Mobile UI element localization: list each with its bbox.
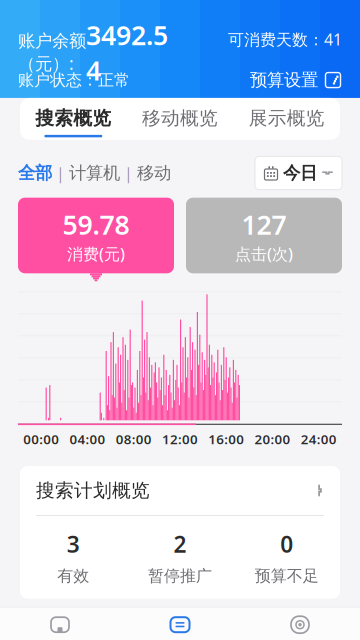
button[interactable]: Scan: [310, 0, 342, 2]
button[interactable]: 预算设置: [250, 69, 342, 91]
staticText: 消费(元): [67, 243, 125, 264]
button[interactable]: 移动概览: [127, 98, 233, 146]
staticText: 预算设置: [250, 69, 318, 91]
button[interactable]: 搜索概览: [20, 98, 127, 146]
button[interactable]: 计算机: [69, 162, 120, 184]
staticText: 127: [241, 207, 286, 242]
staticText: 2: [173, 529, 186, 559]
staticText: 搜索概览: [35, 107, 111, 130]
staticText: 移动概览: [142, 107, 218, 130]
button[interactable]: 我的: [240, 608, 360, 640]
staticText: 3492.54: [86, 17, 168, 88]
staticText: 有效: [57, 566, 89, 586]
staticText: 04:00: [69, 430, 105, 448]
button[interactable]: L1: [18, 0, 219, 7]
staticText: 08:00: [116, 430, 152, 448]
staticText: 全部: [18, 162, 52, 184]
button[interactable]: Company: [264, 0, 296, 3]
staticText: 可消费天数：41: [228, 29, 342, 50]
staticText: 展示概览: [249, 107, 325, 130]
staticText: 00:00: [23, 430, 59, 448]
staticText: 今日: [283, 162, 317, 184]
staticText: 24:00: [301, 430, 337, 448]
button[interactable]: 全部: [18, 162, 52, 184]
staticText: 0: [280, 529, 293, 559]
staticText: 12:00: [162, 430, 198, 448]
staticText: 账户状态：正常: [18, 70, 130, 90]
staticText: 点击(次): [235, 243, 293, 264]
staticText: |: [52, 162, 69, 184]
button[interactable]: 今日: [255, 156, 342, 190]
staticText: 移动: [137, 162, 171, 184]
button[interactable]: 59.78: [18, 198, 174, 281]
staticText: 59.78: [62, 207, 129, 242]
button[interactable]: 首页: [0, 608, 120, 640]
button[interactable]: 展示概览: [233, 98, 340, 146]
staticText: 3: [67, 529, 80, 559]
button[interactable]: 移动: [137, 162, 171, 184]
staticText: 16:00: [208, 430, 244, 448]
staticText: 账户余额（元）:: [18, 30, 86, 75]
button[interactable]: 127: [186, 198, 342, 281]
staticText: 计算机: [69, 162, 120, 184]
staticText: 20:00: [255, 430, 291, 448]
button[interactable]: 点睛: [120, 608, 240, 640]
button[interactable]: 搜索计划概览: [20, 466, 340, 515]
staticText: 暂停推广: [148, 566, 212, 586]
staticText: 预算不足: [255, 566, 319, 586]
staticText: |: [120, 162, 137, 184]
staticText: 搜索计划概览: [36, 479, 150, 502]
